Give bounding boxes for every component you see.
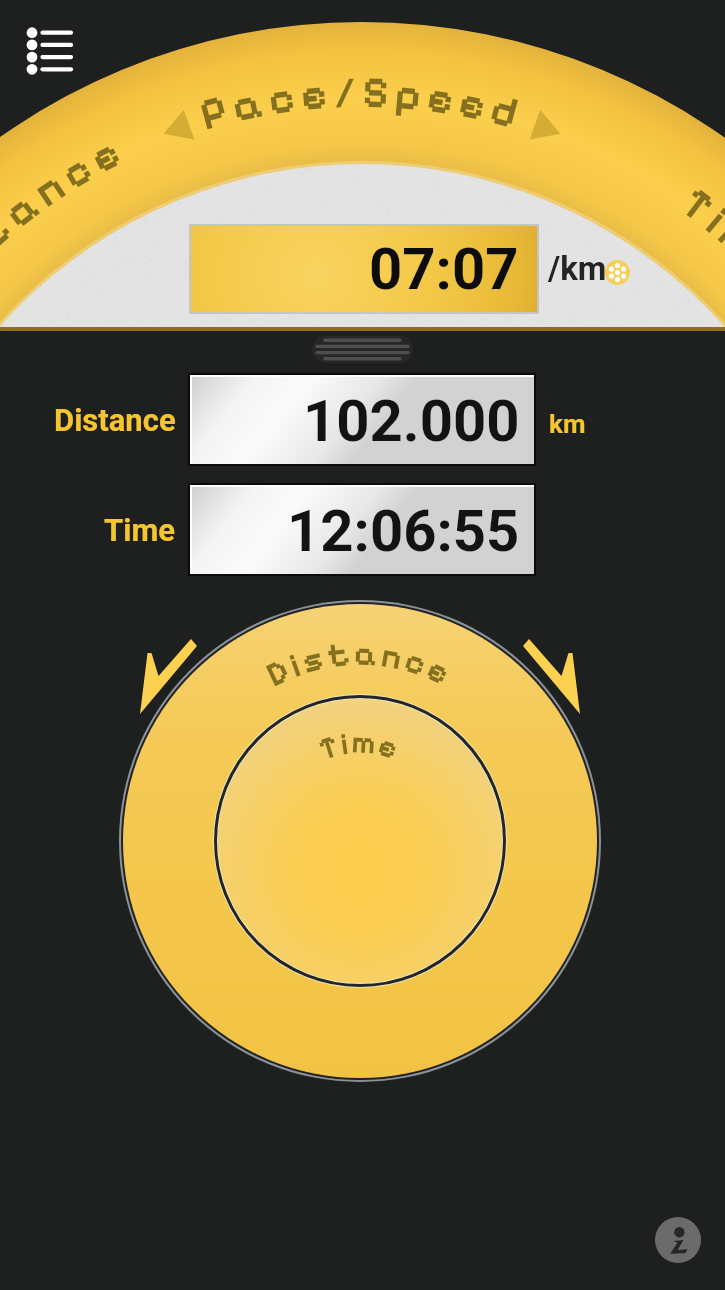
staticText: Time [104,512,176,548]
button[interactable]: Pace/Speed selector [0,0,725,331]
button[interactable]: Distance and Time dial [0,0,725,1290]
button[interactable]: 12:06:55 [192,487,534,574]
staticText: 102.000 [303,387,520,455]
staticText: km [549,409,586,439]
staticText: 12:06:55 [287,497,520,565]
button[interactable]: Menu [0,0,102,102]
staticText: Distance [54,402,176,438]
button[interactable]: 102.000 [192,377,534,464]
button[interactable]: Unit settings [605,260,630,285]
staticText: /km [548,249,607,288]
button[interactable]: Drag handle [312,336,413,363]
button[interactable]: Info [655,1217,701,1263]
button[interactable]: 07:07 [191,226,537,312]
staticText: 07:07 [369,235,519,303]
